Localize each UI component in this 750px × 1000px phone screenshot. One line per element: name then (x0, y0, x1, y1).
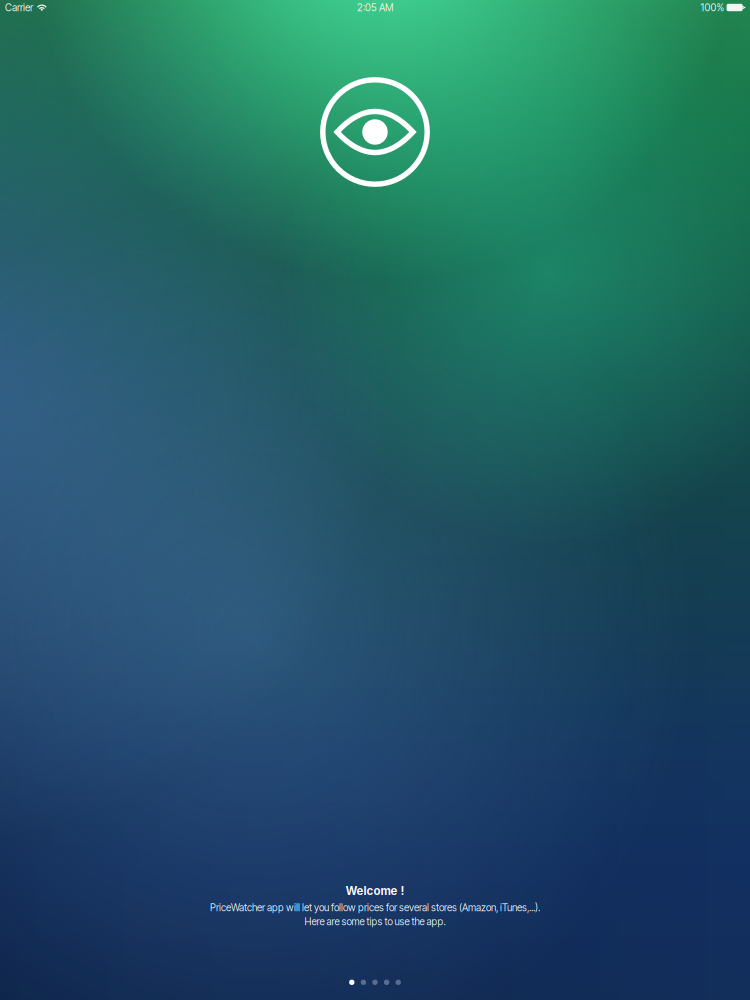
staticText: Welcome ! (345, 884, 404, 898)
button[interactable]: Go to page 3 (372, 980, 378, 985)
button[interactable]: Go to page 5 (395, 980, 401, 985)
staticText: 100% (701, 1, 725, 14)
button[interactable]: Go to page 2 (361, 980, 366, 985)
button[interactable]: Go to page 4 (384, 980, 389, 985)
staticText: PriceWatcher app will let you follow pri… (210, 902, 540, 914)
button[interactable]: Page 1, current page (349, 980, 354, 985)
staticText: 2:05 AM (357, 1, 393, 14)
staticText: Here are some tips to use the app. (304, 916, 445, 928)
staticText: Carrier (5, 1, 33, 14)
